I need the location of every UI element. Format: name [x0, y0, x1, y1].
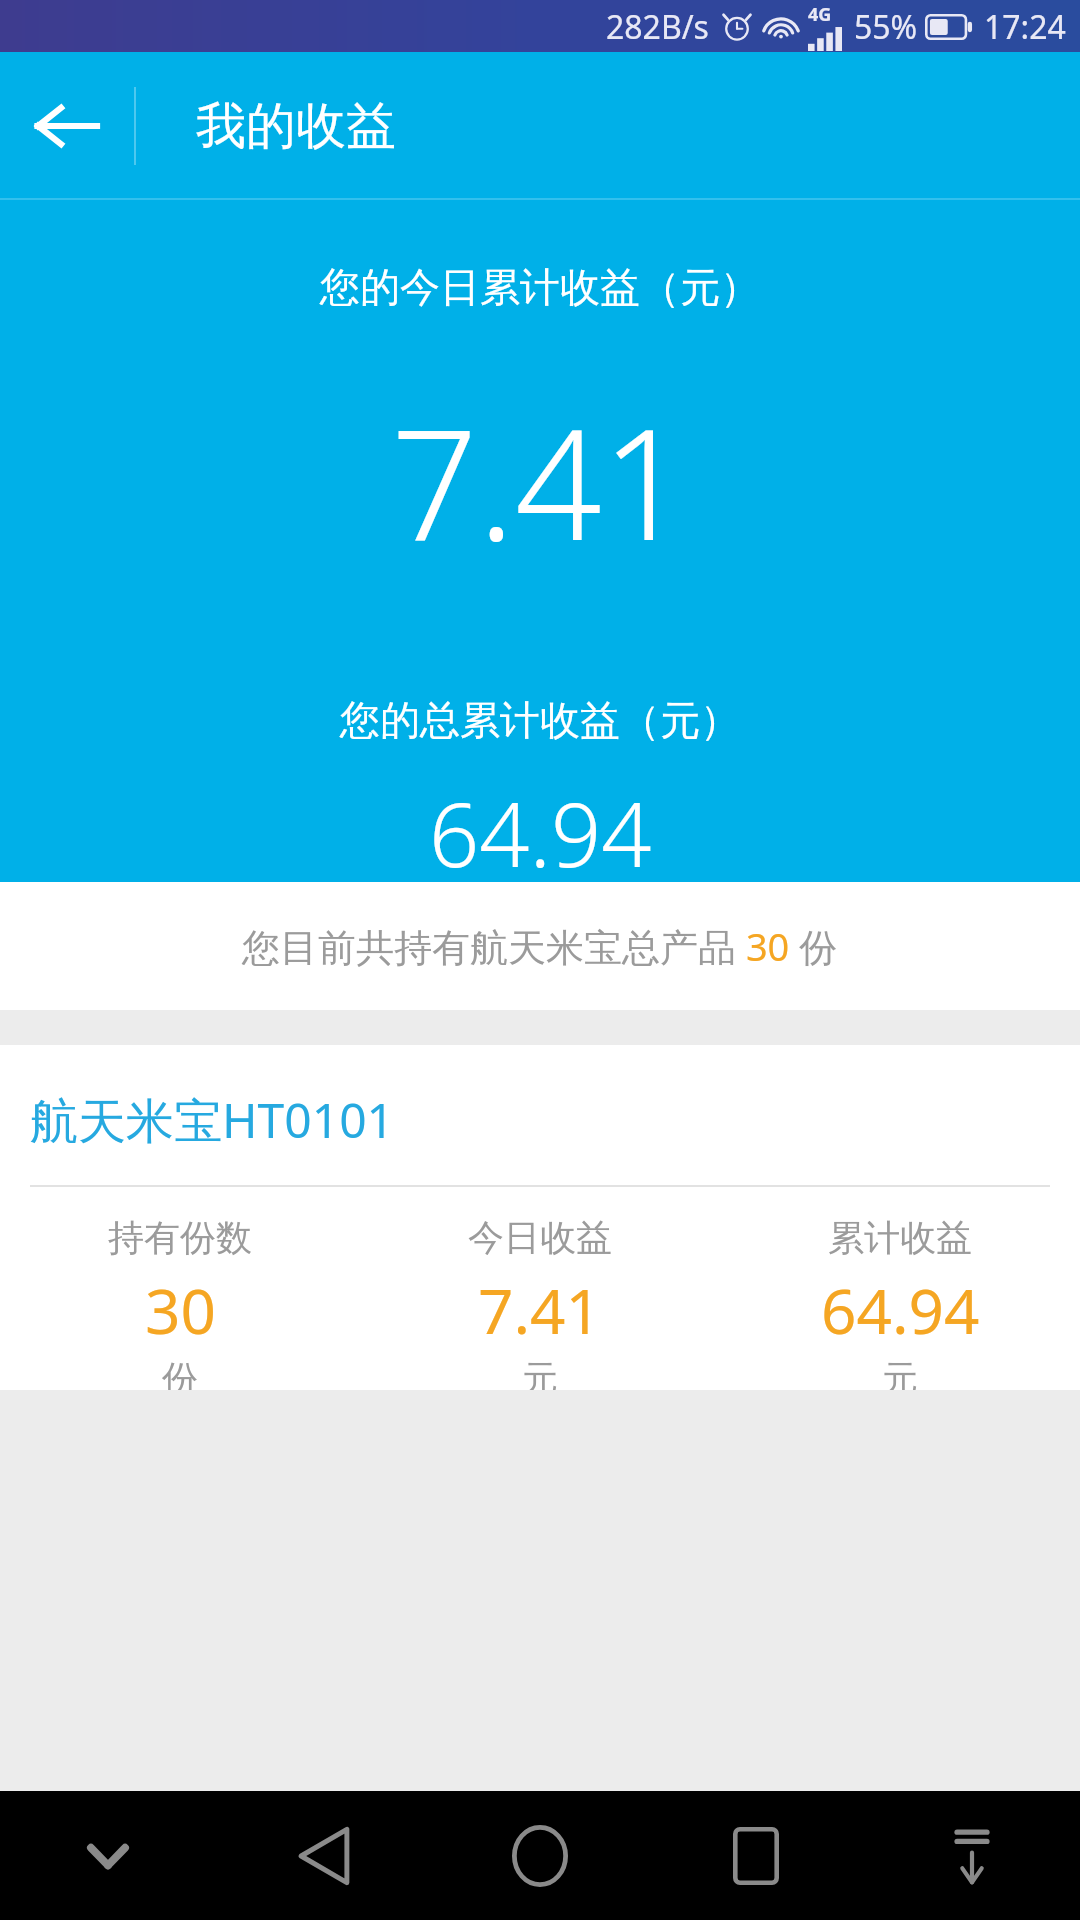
button[interactable]: 航天米宝HT0101 [0, 1045, 1080, 1390]
staticText: 您的总累计收益（元） [340, 695, 740, 745]
staticText: 我的收益 [196, 95, 396, 158]
button[interactable]: Hide keyboard [0, 1791, 216, 1920]
staticText: 30 [145, 1268, 216, 1352]
staticText: 4G [808, 2, 832, 27]
button[interactable]: Collapse [864, 1791, 1080, 1920]
staticText: 元 [882, 1356, 918, 1390]
staticText: 7.41 [391, 378, 689, 585]
staticText: 持有份数 [108, 1215, 252, 1260]
staticText: 您目前共持有航天米宝总产品 30 份 [242, 920, 838, 972]
staticText: 份 [162, 1356, 198, 1390]
button[interactable]: Back [0, 52, 132, 200]
button[interactable]: Home [432, 1791, 648, 1920]
staticText: 累计收益 [828, 1215, 972, 1260]
staticText: 64.94 [429, 773, 652, 882]
staticText: 55% [854, 5, 918, 49]
staticText: 今日收益 [468, 1215, 612, 1260]
button[interactable]: Recents [648, 1791, 864, 1920]
button[interactable]: Back [216, 1791, 432, 1920]
staticText: 282B/s [606, 5, 709, 49]
staticText: 元 [522, 1356, 558, 1390]
staticText: 64.94 [821, 1268, 980, 1352]
staticText: 7.41 [478, 1268, 602, 1352]
staticText: 航天米宝HT0101 [30, 1087, 395, 1153]
staticText: 17:24 [984, 5, 1066, 49]
staticText: 您的今日累计收益（元） [320, 262, 760, 312]
